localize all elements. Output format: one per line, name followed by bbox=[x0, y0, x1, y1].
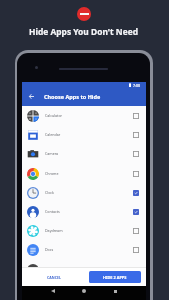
staticText: CANCEL bbox=[47, 275, 62, 280]
button[interactable]: Calendar bbox=[22, 125, 146, 144]
staticText: Docs bbox=[45, 247, 54, 252]
button[interactable]: Contacts bbox=[22, 202, 146, 221]
staticText: Hide Apps You Don't Need bbox=[0, 26, 168, 37]
button[interactable]: Back bbox=[47, 285, 59, 297]
staticText: Contacts bbox=[45, 209, 60, 214]
staticText: Chrome bbox=[45, 171, 59, 176]
staticText: Clock bbox=[45, 190, 55, 195]
button[interactable]: CANCEL bbox=[43, 272, 66, 283]
button[interactable]: Chrome bbox=[22, 164, 146, 183]
staticText: Calendar bbox=[45, 132, 61, 137]
button[interactable]: Downloads bbox=[22, 260, 146, 279]
staticText: 7:00 bbox=[133, 83, 141, 88]
button[interactable]: Calculator bbox=[22, 106, 146, 125]
button[interactable]: Home bbox=[78, 285, 90, 297]
staticText: Downloads bbox=[45, 267, 64, 272]
staticText: Daydream bbox=[45, 228, 63, 233]
button[interactable]: Clock bbox=[22, 183, 146, 202]
staticText: Calculator bbox=[45, 113, 63, 118]
staticText: Camera bbox=[45, 151, 59, 156]
button[interactable]: Navigate up bbox=[25, 90, 37, 102]
staticText: Choose Apps to Hide bbox=[44, 93, 101, 100]
button[interactable]: Docs bbox=[22, 240, 146, 259]
button[interactable]: HIDE 2 APPS bbox=[89, 271, 141, 283]
button[interactable]: Daydream bbox=[22, 221, 146, 240]
button[interactable]: Camera bbox=[22, 144, 146, 163]
staticText: HIDE 2 APPS bbox=[103, 275, 127, 280]
button[interactable]: Recent apps bbox=[109, 285, 121, 297]
